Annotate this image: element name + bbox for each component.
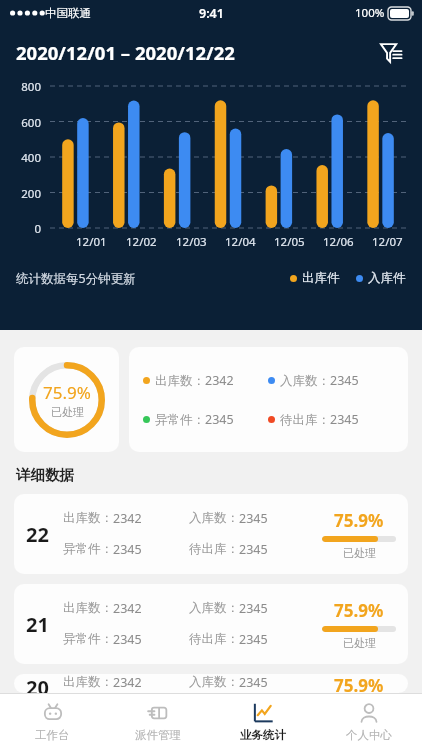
staticText: 12/03 [176,234,207,250]
staticText: 出库件 [302,270,340,286]
staticText: 2342 [113,674,142,691]
button[interactable]: 业务统计 [210,694,316,750]
staticText: 100% [355,5,385,21]
button[interactable]: 出库数： [129,347,408,452]
staticText: 600 [10,115,41,131]
staticText: 2345 [239,510,268,527]
staticText: 2345 [330,411,359,428]
other: 派件管理 [147,702,169,724]
staticText: 已处理 [343,636,376,650]
staticText: 派件管理 [135,728,181,742]
staticText: 2020/12/01 – 2020/12/22 [16,40,235,65]
staticText: 出库数： [155,373,205,389]
staticText: 12/01 [76,234,107,250]
other: 业务统计 [252,702,274,724]
staticText: 200 [10,186,41,202]
staticText: 400 [10,150,41,166]
staticText: 12/07 [372,234,403,250]
staticText: 0 [10,221,41,237]
staticText: 20 [26,674,49,693]
other: 工作台 [42,702,64,724]
staticText: 工作台 [35,728,70,742]
button[interactable]: Filter [374,35,408,69]
staticText: 异常件： [63,541,113,557]
button[interactable]: 21 [14,584,408,664]
staticText: 21 [26,611,49,638]
button[interactable]: 个人中心 [316,694,422,750]
staticText: 12/05 [274,234,305,250]
button[interactable]: 20 [14,674,408,693]
staticText: 12/06 [323,234,354,250]
staticText: 已处理 [343,546,376,560]
staticText: 2342 [205,372,234,389]
staticText: 业务统计 [240,728,286,742]
staticText: 入库数： [189,600,239,616]
staticText: 2345 [113,541,142,558]
staticText: 待出库： [280,412,330,428]
staticText: 详细数据 [16,466,74,484]
staticText: 出库数： [63,600,113,616]
staticText: 个人中心 [346,728,392,742]
staticText: 出库数： [63,510,113,526]
button[interactable]: 派件管理 [105,694,210,750]
staticText: 待出库： [189,541,239,557]
staticText: 800 [10,79,41,95]
staticText: 75.9% [43,381,91,404]
staticText: 75.9% [334,509,384,532]
staticText: 22 [26,521,49,548]
other: 个人中心 [358,702,380,724]
staticText: 入库数： [280,373,330,389]
staticText: 2342 [113,600,142,617]
staticText: 出库数： [63,674,113,690]
staticText: 75.9% [334,599,384,622]
staticText: 2345 [239,631,268,648]
staticText: 12/04 [225,234,256,250]
staticText: 入库数： [189,510,239,526]
staticText: 异常件： [63,631,113,647]
staticText: 异常件： [155,412,205,428]
staticText: 已处理 [51,405,84,419]
staticText: 9:41 [199,5,224,22]
button[interactable]: 22 [14,494,408,574]
staticText: 2345 [113,631,142,648]
staticText: 12/02 [126,234,157,250]
staticText: 入库数： [189,674,239,690]
staticText: 中国联通 [45,6,91,20]
button[interactable]: 工作台 [0,694,105,750]
staticText: 2345 [239,674,268,691]
staticText: 入库件 [368,270,406,286]
button[interactable]: 75.9% [14,347,119,452]
staticText: 75.9% [334,674,384,693]
staticText: 2342 [113,510,142,527]
staticText: 统计数据每5分钟更新 [16,270,136,287]
staticText: 2345 [205,411,234,428]
staticText: 2345 [239,541,268,558]
staticText: 待出库： [189,631,239,647]
staticText: 2345 [330,372,359,389]
staticText: 2345 [239,600,268,617]
